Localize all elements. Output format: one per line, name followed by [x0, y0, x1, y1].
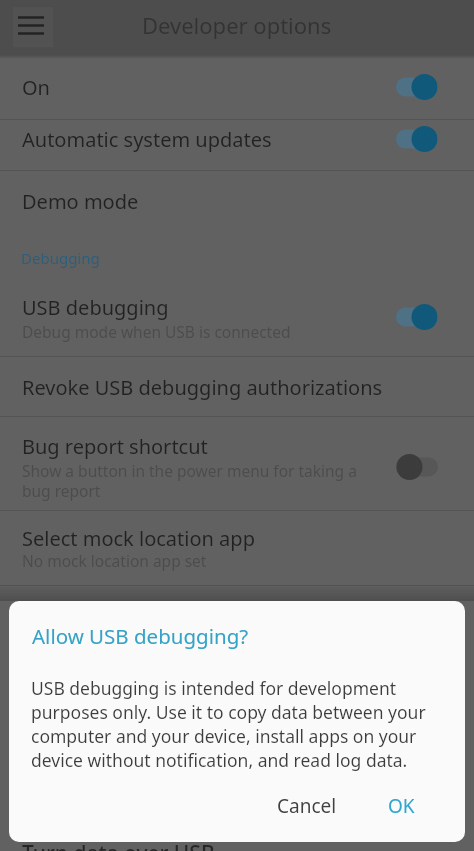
staticText: On — [22, 74, 50, 101]
staticText: Turn data over USB — [22, 839, 215, 851]
button[interactable] — [0, 513, 474, 585]
staticText: Select mock location app — [22, 525, 255, 552]
staticText: Developer options — [142, 10, 332, 40]
staticText: Allow USB debugging? — [32, 622, 249, 650]
button[interactable] — [0, 285, 474, 360]
staticText: Debugging — [21, 248, 100, 268]
staticText: Debug mode when USB is connected — [22, 321, 291, 342]
button[interactable] — [13, 7, 53, 47]
staticText: Bug report shortcut — [22, 433, 208, 460]
staticText: Cancel — [277, 793, 337, 819]
button[interactable]: OK — [368, 784, 434, 828]
button[interactable] — [0, 55, 474, 115]
staticText: USB debugging — [22, 294, 169, 321]
staticText: Demo mode — [22, 188, 139, 215]
button[interactable]: Cancel — [262, 784, 352, 828]
staticText: Automatic system updates — [22, 126, 272, 153]
staticText: USB debugging is intended for developmen… — [31, 676, 426, 772]
staticText: No mock location app set — [22, 550, 207, 571]
button[interactable] — [0, 416, 474, 512]
staticText: Revoke USB debugging authorizations — [22, 374, 383, 401]
button[interactable] — [0, 169, 474, 230]
staticText: Show a button in the power menu for taki… — [22, 460, 357, 501]
staticText: OK — [388, 793, 415, 819]
button[interactable] — [0, 361, 474, 415]
button[interactable] — [0, 116, 474, 168]
